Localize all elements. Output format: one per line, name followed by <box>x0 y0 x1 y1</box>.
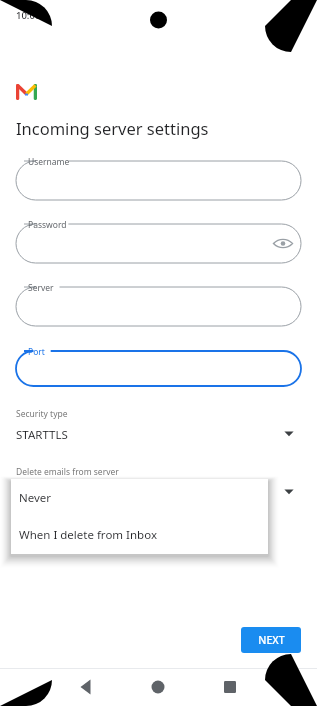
button[interactable]: Server <box>0 0 317 706</box>
button[interactable]: Username <box>0 0 317 706</box>
staticText: Server <box>28 282 54 294</box>
staticText: Delete emails from server <box>16 466 119 478</box>
button[interactable]: When I delete from Inbox <box>11 516 268 554</box>
staticText: 10:00 <box>16 9 41 22</box>
staticText: Security type <box>16 408 68 420</box>
button[interactable]: Port <box>0 0 317 706</box>
button[interactable]: Delete emails from server <box>0 463 317 508</box>
button[interactable]: Password <box>0 0 317 706</box>
staticText: Password <box>28 219 67 231</box>
button[interactable]: NEXT <box>241 627 301 653</box>
button[interactable]: Security type <box>0 405 317 450</box>
staticText: When I delete from Inbox <box>19 527 157 543</box>
staticText: Never <box>19 490 52 506</box>
button[interactable]: Back <box>67 668 105 706</box>
staticText: STARTTLS <box>16 427 68 443</box>
button[interactable]: Home <box>139 668 177 706</box>
staticText: NEXT <box>258 633 285 647</box>
staticText: Port <box>28 346 45 358</box>
staticText: Incoming server settings <box>16 117 209 139</box>
button[interactable]: Never <box>11 479 268 516</box>
button[interactable]: Recent apps <box>211 668 249 706</box>
staticText: Username <box>28 156 70 168</box>
